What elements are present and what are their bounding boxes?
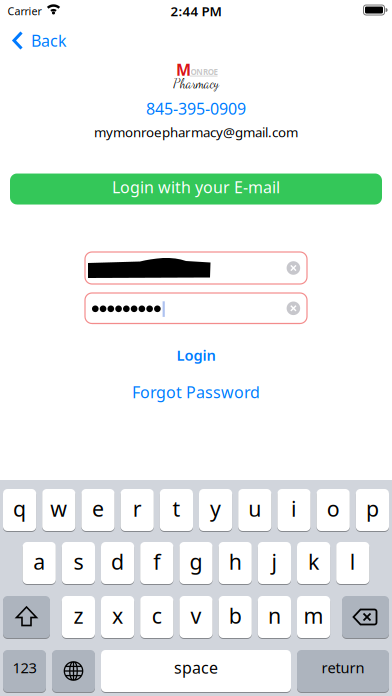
staticText: u <box>248 494 261 523</box>
staticText: y <box>210 494 221 523</box>
button[interactable]: t <box>160 489 193 531</box>
staticText: 2:44 PM <box>170 2 221 20</box>
staticText: Back <box>31 30 67 51</box>
button[interactable]: g <box>179 542 213 584</box>
staticText: i <box>291 494 297 523</box>
button[interactable]: Login <box>176 345 215 365</box>
button[interactable]: 123 <box>3 650 46 692</box>
staticText: Forgot Password <box>132 381 260 403</box>
staticText: M <box>176 59 191 80</box>
staticText: n <box>268 601 281 630</box>
button[interactable]: Login with your E-mail <box>10 173 382 204</box>
staticText: r <box>133 494 142 523</box>
staticText: t <box>172 494 180 523</box>
button[interactable]: h <box>219 542 252 584</box>
button[interactable]: Clear text <box>287 261 300 275</box>
button[interactable]: b <box>219 596 252 638</box>
staticText: v <box>190 601 201 630</box>
button[interactable]: p <box>356 489 389 531</box>
staticText: j <box>271 547 277 576</box>
staticText: mymonroepharmacy@gmail.com <box>94 123 298 141</box>
button[interactable]: c <box>140 596 173 638</box>
staticText: 123 <box>12 658 36 677</box>
button[interactable]: u <box>238 489 271 531</box>
staticText: Pharmacy <box>173 76 219 91</box>
button[interactable]: n <box>258 596 291 638</box>
staticText: space <box>174 657 218 678</box>
button[interactable]: Delete <box>342 596 389 638</box>
button[interactable]: m <box>297 596 330 638</box>
button[interactable]: k <box>297 542 330 584</box>
button[interactable]: l <box>336 542 369 584</box>
staticText: m <box>304 601 324 630</box>
staticText: h <box>229 547 242 576</box>
staticText: z <box>73 601 83 630</box>
staticText: e <box>92 494 104 523</box>
button[interactable]: j <box>258 542 291 584</box>
staticText: Login with your E-mail <box>112 176 280 198</box>
button[interactable]: d <box>101 542 134 584</box>
staticText: x <box>112 601 123 630</box>
button[interactable]: x <box>101 596 134 638</box>
staticText: s <box>73 547 83 576</box>
button[interactable]: z <box>62 596 95 638</box>
button[interactable]: Shift <box>3 596 50 638</box>
staticText: g <box>189 547 202 576</box>
staticText: ONROE <box>191 66 217 77</box>
staticText: d <box>111 547 124 576</box>
staticText: p <box>366 494 379 523</box>
button[interactable]: 845-395-0909 <box>146 98 246 119</box>
button[interactable]: a <box>23 542 56 584</box>
button[interactable]: space <box>101 650 291 692</box>
staticText: k <box>308 547 319 576</box>
button[interactable]: f <box>140 542 173 584</box>
staticText: o <box>327 494 340 523</box>
staticText: l <box>350 547 356 576</box>
staticText: q <box>13 494 26 523</box>
button[interactable]: r <box>121 489 154 531</box>
button[interactable]: Next keyboard <box>52 650 95 692</box>
staticText: c <box>152 601 162 630</box>
staticText: a <box>33 547 45 576</box>
button[interactable]: y <box>199 489 232 531</box>
button[interactable]: e <box>81 489 115 531</box>
staticText: f <box>153 547 160 576</box>
button[interactable]: q <box>3 489 36 531</box>
button[interactable]: o <box>317 489 350 531</box>
button[interactable]: s <box>62 542 95 584</box>
staticText: w <box>50 494 67 523</box>
staticText: Login <box>176 345 215 365</box>
staticText: Carrier <box>7 4 41 18</box>
button[interactable]: Clear text <box>287 301 300 315</box>
staticText: return <box>321 658 364 677</box>
button[interactable]: return <box>297 650 389 692</box>
button[interactable]: Forgot Password <box>132 381 260 403</box>
button[interactable]: i <box>277 489 311 531</box>
button[interactable]: v <box>179 596 213 638</box>
button[interactable]: Back <box>0 18 90 62</box>
staticText: b <box>229 601 242 630</box>
button[interactable]: w <box>42 489 75 531</box>
staticText: 845-395-0909 <box>146 98 246 119</box>
